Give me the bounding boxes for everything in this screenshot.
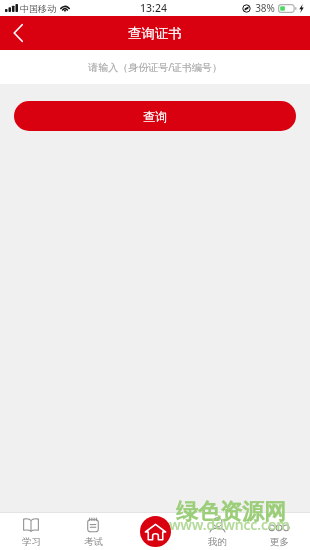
button[interactable]: Back [0, 16, 36, 50]
staticText: 学习 [22, 536, 41, 548]
button[interactable]: 我的 [186, 512, 248, 550]
staticText: www.downcc.com [169, 515, 290, 534]
staticText: 绿色资源网 [176, 498, 286, 526]
staticText: 13:24 [140, 1, 167, 15]
button[interactable]: 请输入（身份证号/证书编号） [0, 50, 310, 84]
button[interactable]: 更多 [248, 512, 310, 550]
button[interactable]: 学习 [0, 512, 62, 550]
staticText: 更多 [270, 536, 289, 548]
staticText: 中国移动 [20, 3, 56, 14]
button[interactable]: Home [140, 516, 171, 547]
staticText: 查询 [143, 109, 167, 124]
button[interactable]: 查询 [14, 101, 296, 131]
staticText: 查询证书 [128, 25, 182, 42]
staticText: 考试 [84, 536, 103, 548]
staticText: 请输入（身份证号/证书编号） [88, 60, 222, 74]
staticText: 38% [255, 1, 275, 15]
button[interactable]: 考试 [62, 512, 124, 550]
staticText: 我的 [208, 536, 227, 548]
